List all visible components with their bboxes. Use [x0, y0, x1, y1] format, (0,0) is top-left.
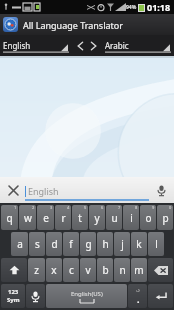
staticText: 123: [8, 288, 19, 296]
staticText: p: [162, 211, 169, 225]
button[interactable]: r: [55, 205, 71, 230]
staticText: m: [134, 263, 144, 277]
button[interactable]: n: [114, 258, 130, 282]
staticText: 4: [67, 205, 70, 210]
button[interactable]: Clear text: [4, 181, 22, 199]
staticText: 94%: [126, 4, 137, 11]
staticText: i: [130, 211, 133, 225]
staticText: :-): [136, 288, 140, 293]
staticText: d: [51, 237, 58, 251]
staticText: English: [28, 185, 59, 197]
staticText: n: [119, 263, 126, 277]
button[interactable]: v: [80, 258, 96, 282]
button[interactable]: y: [89, 205, 105, 230]
staticText: t: [78, 211, 82, 225]
button[interactable]: All Language Translator: [0, 14, 174, 35]
button[interactable]: b: [97, 258, 113, 282]
staticText: 5: [84, 205, 87, 210]
staticText: 9: [152, 205, 155, 210]
button[interactable]: k: [131, 232, 147, 256]
staticText: r: [61, 211, 66, 225]
staticText: q: [6, 211, 13, 225]
button[interactable]: d: [46, 232, 62, 256]
button[interactable]: z: [28, 258, 45, 282]
staticText: 01:18: [147, 1, 171, 13]
button[interactable]: Period: [128, 284, 147, 308]
staticText: English(US): [71, 290, 103, 298]
button[interactable]: English: [25, 177, 149, 203]
staticText: 6: [101, 205, 104, 210]
staticText: 3: [50, 205, 53, 210]
button[interactable]: l: [148, 232, 164, 256]
staticText: .: [137, 293, 140, 305]
button[interactable]: j: [114, 232, 130, 256]
button[interactable]: p: [157, 205, 173, 230]
staticText: g: [85, 237, 92, 251]
button[interactable]: i: [123, 205, 139, 230]
button[interactable]: e: [37, 205, 54, 230]
staticText: v: [85, 263, 91, 277]
staticText: o: [145, 211, 152, 225]
button[interactable]: q: [1, 205, 18, 230]
button[interactable]: g: [80, 232, 96, 256]
staticText: b: [102, 263, 109, 277]
staticText: j: [121, 237, 124, 251]
staticText: 8: [135, 205, 138, 210]
staticText: x: [51, 263, 57, 277]
button[interactable]: c: [63, 258, 79, 282]
staticText: 1: [14, 205, 17, 210]
button[interactable]: t: [72, 205, 88, 230]
button[interactable]: Swap languages: [72, 35, 102, 56]
staticText: 2: [32, 205, 35, 210]
staticText: 7: [118, 205, 121, 210]
staticText: Sym: [7, 296, 20, 304]
button[interactable]: Voice input: [152, 181, 170, 199]
staticText: z: [34, 263, 39, 277]
staticText: u: [111, 211, 118, 225]
staticText: h: [102, 237, 109, 251]
button[interactable]: Enter: [148, 284, 173, 308]
staticText: All Language Translator: [23, 19, 123, 31]
button[interactable]: o: [140, 205, 156, 230]
staticText: Arabic: [105, 40, 129, 51]
staticText: English: [3, 40, 31, 51]
staticText: f: [69, 237, 73, 251]
staticText: s: [35, 237, 40, 251]
button[interactable]: Backspace: [148, 258, 173, 282]
button[interactable]: Voice typing: [26, 284, 45, 308]
staticText: 0: [169, 205, 172, 210]
button[interactable]: m: [131, 258, 147, 282]
staticText: e: [43, 211, 49, 225]
staticText: l: [155, 237, 158, 251]
button[interactable]: a: [11, 232, 28, 256]
button[interactable]: u: [106, 205, 122, 230]
staticText: w: [24, 211, 32, 225]
button[interactable]: w: [19, 205, 36, 230]
button[interactable]: h: [97, 232, 113, 256]
staticText: y: [94, 211, 100, 225]
staticText: a: [17, 237, 23, 251]
button[interactable]: x: [46, 258, 62, 282]
button[interactable]: s: [29, 232, 45, 256]
button[interactable]: English: [0, 35, 72, 56]
button[interactable]: Space: [46, 284, 127, 308]
button[interactable]: f: [63, 232, 79, 256]
button[interactable]: Arabic: [102, 35, 174, 56]
button[interactable]: Shift: [1, 258, 27, 282]
staticText: c: [69, 263, 74, 277]
button[interactable]: Symbols: [1, 284, 25, 308]
staticText: k: [136, 237, 142, 251]
